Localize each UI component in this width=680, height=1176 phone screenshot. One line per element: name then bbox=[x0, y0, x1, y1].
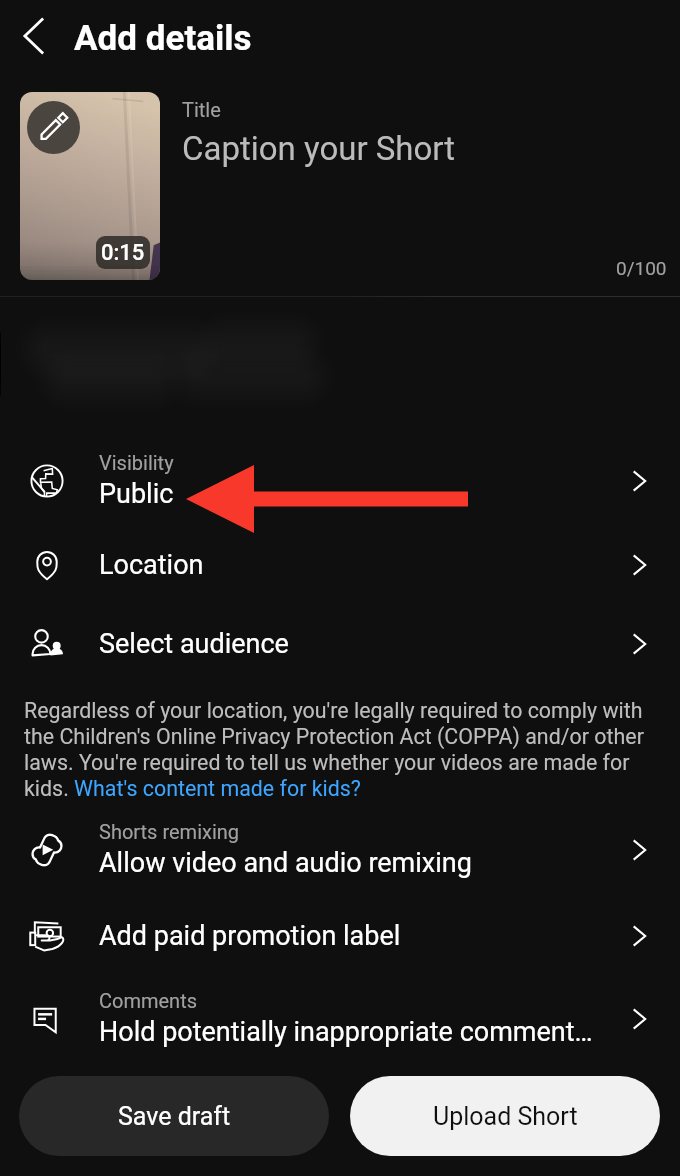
button[interactable]: Comments bbox=[0, 979, 680, 1058]
staticText: Add paid promotion label bbox=[99, 920, 401, 952]
staticText: Title bbox=[182, 98, 221, 121]
button[interactable]: Save draft bbox=[19, 1076, 329, 1156]
staticText: Caption your Short bbox=[182, 129, 456, 168]
button[interactable]: Add paid promotion label bbox=[0, 896, 680, 975]
staticText: Select audience bbox=[99, 628, 289, 660]
button[interactable]: Edit bbox=[27, 101, 80, 154]
button[interactable]: Visibility bbox=[0, 441, 680, 520]
staticText: 0:15 bbox=[101, 240, 145, 266]
staticText: 0/100 bbox=[616, 257, 667, 279]
staticText: Regardless of your location, you're lega… bbox=[24, 698, 658, 801]
staticText: Save draft bbox=[118, 1102, 231, 1131]
staticText: Visibility bbox=[99, 451, 174, 474]
staticText: Location bbox=[99, 549, 204, 581]
staticText: Allow video and audio remixing bbox=[99, 847, 472, 879]
button[interactable]: Shorts remixing bbox=[0, 810, 680, 889]
staticText: Add details bbox=[74, 18, 252, 59]
staticText: Shorts remixing bbox=[99, 820, 240, 843]
button[interactable]: Back bbox=[10, 12, 58, 60]
staticText: Upload Short bbox=[433, 1102, 578, 1131]
button[interactable]: Select audience bbox=[0, 604, 680, 683]
staticText: Hold potentially inappropriate comment… bbox=[99, 1016, 593, 1048]
button[interactable]: Upload Short bbox=[350, 1076, 660, 1156]
button[interactable]: What's content made for kids? bbox=[73, 777, 359, 803]
staticText: Public bbox=[99, 478, 174, 510]
button[interactable]: Location bbox=[0, 525, 680, 604]
staticText: Comments bbox=[99, 989, 198, 1012]
button[interactable]: Video thumbnail bbox=[20, 92, 160, 280]
